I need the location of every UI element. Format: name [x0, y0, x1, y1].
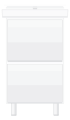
- button[interactable]: Washbasin vanity unit with two drawers: [0, 0, 70, 120]
